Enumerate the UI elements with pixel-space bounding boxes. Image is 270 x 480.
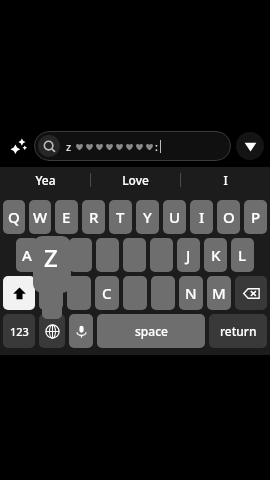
button[interactable]: J [177, 238, 200, 272]
staticText: K [211, 245, 221, 265]
staticText: M [212, 283, 226, 303]
button[interactable] [123, 276, 147, 310]
button[interactable]: I [181, 167, 270, 192]
button[interactable]: A [16, 238, 38, 272]
button[interactable] [42, 238, 65, 272]
button[interactable]: Love [91, 167, 180, 192]
button[interactable]: Q [3, 200, 25, 234]
button[interactable]: P [244, 200, 267, 234]
button[interactable]: Delete [235, 276, 267, 310]
button[interactable]: W [29, 200, 51, 234]
staticText: R [89, 207, 99, 227]
staticText: L [238, 245, 247, 265]
button[interactable] [123, 238, 146, 272]
button[interactable]: Effects [8, 135, 30, 157]
staticText: 123 [10, 324, 29, 339]
button[interactable]: Send [236, 132, 264, 160]
button[interactable] [150, 238, 173, 272]
button[interactable]: N [179, 276, 203, 310]
button[interactable]: U [163, 200, 186, 234]
staticText: z [66, 139, 72, 154]
staticText: W [33, 207, 48, 227]
staticText: Y [143, 207, 152, 227]
button[interactable]: space [97, 314, 205, 348]
staticText: Z [44, 241, 58, 274]
staticText: J [186, 245, 191, 265]
staticText: Love [122, 172, 149, 188]
staticText: Q [8, 207, 20, 227]
staticText: I [199, 207, 205, 227]
button[interactable]: Shift [3, 276, 35, 310]
button[interactable]: Change keyboard [39, 314, 65, 348]
button[interactable] [67, 276, 91, 310]
staticText: U [169, 207, 181, 227]
button[interactable] [151, 276, 175, 310]
staticText: : [155, 139, 158, 154]
button[interactable]: return [209, 314, 267, 348]
button[interactable]: z [34, 131, 231, 161]
staticText: T [116, 207, 125, 227]
button[interactable]: I [190, 200, 213, 234]
staticText: O [223, 207, 235, 227]
button[interactable]: M [207, 276, 231, 310]
staticText: N [185, 283, 197, 303]
button[interactable]: Y [136, 200, 159, 234]
button[interactable]: Yea [0, 167, 90, 192]
button[interactable]: K [204, 238, 227, 272]
button[interactable] [96, 238, 119, 272]
button[interactable]: O [217, 200, 240, 234]
staticText: C [102, 283, 112, 303]
staticText: space [135, 323, 168, 339]
staticText: Yea [35, 172, 56, 188]
button[interactable]: Dictate [69, 314, 93, 348]
staticText: A [22, 245, 32, 265]
button[interactable] [69, 238, 92, 272]
button[interactable] [39, 276, 63, 310]
button[interactable]: 123 [3, 314, 35, 348]
button[interactable]: T [109, 200, 132, 234]
button[interactable]: R [82, 200, 105, 234]
staticText: return [220, 323, 257, 339]
button[interactable]: E [55, 200, 78, 234]
staticText: P [251, 207, 261, 227]
button[interactable]: C [95, 276, 119, 310]
button[interactable]: L [231, 238, 254, 272]
staticText: E [62, 207, 71, 227]
staticText: I [223, 172, 228, 188]
